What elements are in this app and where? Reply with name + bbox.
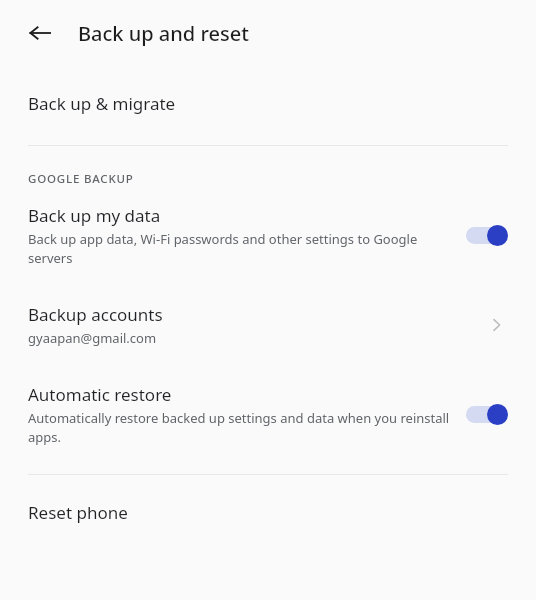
button[interactable]: Automatic restore (0, 367, 536, 461)
button[interactable]: Backup accounts (0, 283, 536, 367)
staticText: Automatic restore (28, 383, 172, 406)
staticText: Back up my data (28, 204, 161, 227)
staticText: Back up and reset (78, 20, 249, 47)
button[interactable]: Back up my data (0, 187, 536, 283)
staticText: Back up & migrate (28, 92, 176, 115)
staticText: GOOGLE BACKUP (28, 171, 134, 187)
button[interactable]: Back (28, 18, 58, 48)
staticText: Back up app data, Wi-Fi passwords and ot… (28, 230, 454, 267)
staticText: Backup accounts (28, 303, 163, 326)
button[interactable]: Back up & migrate (0, 66, 536, 140)
button[interactable]: Back up my data, on (466, 222, 508, 248)
staticText: Automatically restore backed up settings… (28, 409, 454, 446)
button[interactable]: Automatic restore, on (466, 401, 508, 427)
button[interactable]: Reset phone (0, 475, 536, 549)
staticText: gyaapan@gmail.com (28, 329, 157, 347)
staticText: Reset phone (28, 501, 128, 524)
